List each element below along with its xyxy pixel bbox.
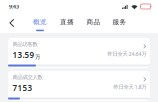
button[interactable]: 直播 [60, 13, 74, 33]
staticText: 概览 [33, 18, 47, 26]
button[interactable]: Back [6, 13, 18, 33]
button[interactable]: 服务 [112, 13, 126, 33]
button[interactable]: 商品成交人数 [8, 71, 150, 101]
staticText: 9:43 [9, 3, 19, 10]
staticText: 直播 [60, 18, 74, 26]
staticText: 商品成交人数 [12, 74, 42, 81]
staticText: 7153 [12, 83, 32, 93]
staticText: 万 [35, 54, 40, 60]
staticText: 13.59 [12, 50, 34, 60]
staticText: 服务 [112, 18, 126, 26]
button[interactable]: 商品访客数 [8, 38, 150, 68]
staticText: 商品 [86, 18, 100, 26]
button[interactable]: 商品 [86, 13, 100, 33]
staticText: 昨日全天 24.64万 [107, 50, 146, 57]
staticText: 昨日全天 1.8万 [113, 83, 146, 90]
staticText: 商品访客数 [12, 41, 37, 48]
button[interactable]: 概览 [33, 13, 47, 33]
